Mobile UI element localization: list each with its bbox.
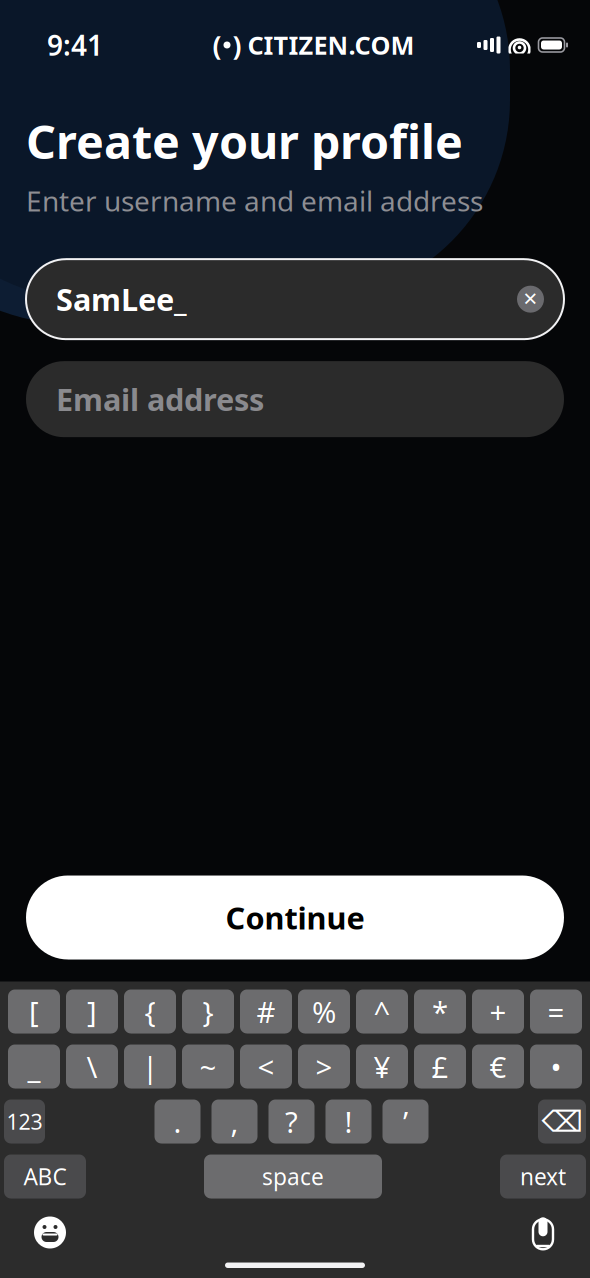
button[interactable]: + [472,989,524,1033]
staticText: ¥ [373,1047,390,1086]
button[interactable]: * [414,989,466,1033]
staticText: # [256,992,275,1031]
button[interactable]: Email address [26,361,564,437]
button[interactable]: , [211,1099,257,1143]
staticText: space [262,1161,324,1191]
button[interactable]: } [182,989,234,1033]
staticText: Create your profile [26,110,463,172]
staticText: ✕ [522,289,538,310]
button[interactable]: ] [66,989,118,1033]
button[interactable]: Emoji [34,1216,66,1248]
staticText: CITIZEN.COM [247,28,414,62]
button[interactable]: \ [66,1044,118,1088]
button[interactable]: Continue [26,875,564,959]
staticText: next [520,1161,566,1191]
button[interactable]: ’ [382,1099,428,1143]
button[interactable]: Dictation [532,1218,554,1247]
staticText: ⌫ [541,1105,582,1138]
staticText: Continue [225,897,364,938]
button[interactable]: { [124,989,176,1033]
button[interactable]: _ [8,1044,60,1088]
staticText: ’ [403,1102,408,1141]
button[interactable]: • [530,1044,582,1088]
staticText: > [315,1047,332,1086]
staticText: < [257,1047,274,1086]
button[interactable]: ¥ [356,1044,408,1088]
button[interactable]: ! [325,1099,371,1143]
staticText: ! [344,1102,352,1141]
staticText: [ [29,992,39,1031]
button[interactable]: SamLee_ [26,259,564,339]
button[interactable]: [ [8,989,60,1033]
staticText: 123 [6,1107,42,1136]
staticText: _ [27,1047,40,1086]
staticText: } [202,992,213,1031]
staticText: ? [285,1102,298,1141]
button[interactable]: % [298,989,350,1033]
staticText: ) [232,27,241,63]
staticText: SamLee_ [56,279,187,319]
staticText: = [547,992,564,1031]
staticText: % [312,992,336,1031]
staticText: € [489,1047,506,1086]
button[interactable]: = [530,989,582,1033]
button[interactable]: . [154,1099,200,1143]
button[interactable]: ABC [4,1154,86,1198]
staticText: ^ [373,992,390,1031]
button[interactable]: ? [268,1099,314,1143]
staticText: ~ [199,1047,216,1086]
button[interactable]: space [204,1154,382,1198]
button[interactable]: ~ [182,1044,234,1088]
staticText: , [230,1102,238,1141]
staticText: ( [212,27,221,63]
staticText: { [144,992,155,1031]
staticText: ] [87,992,97,1031]
staticText: 9:41 [47,26,103,64]
button[interactable]: next [500,1154,586,1198]
button[interactable]: € [472,1044,524,1088]
button[interactable]: > [298,1044,350,1088]
button[interactable]: < [240,1044,292,1088]
button[interactable]: Delete [538,1099,586,1143]
button[interactable]: | [124,1044,176,1088]
button[interactable]: ^ [356,989,408,1033]
staticText: \ [86,1047,97,1086]
staticText: Enter username and email address [26,182,483,219]
staticText: ABC [23,1161,66,1191]
button[interactable]: £ [414,1044,466,1088]
button[interactable]: 123 [4,1099,45,1143]
button[interactable]: # [240,989,292,1033]
staticText: Email address [56,379,264,419]
staticText: . [173,1102,181,1141]
staticText: + [489,992,506,1031]
staticText: | [142,1047,158,1086]
staticText: • [550,1047,561,1086]
staticText: * [432,992,448,1031]
staticText: £ [431,1047,448,1086]
